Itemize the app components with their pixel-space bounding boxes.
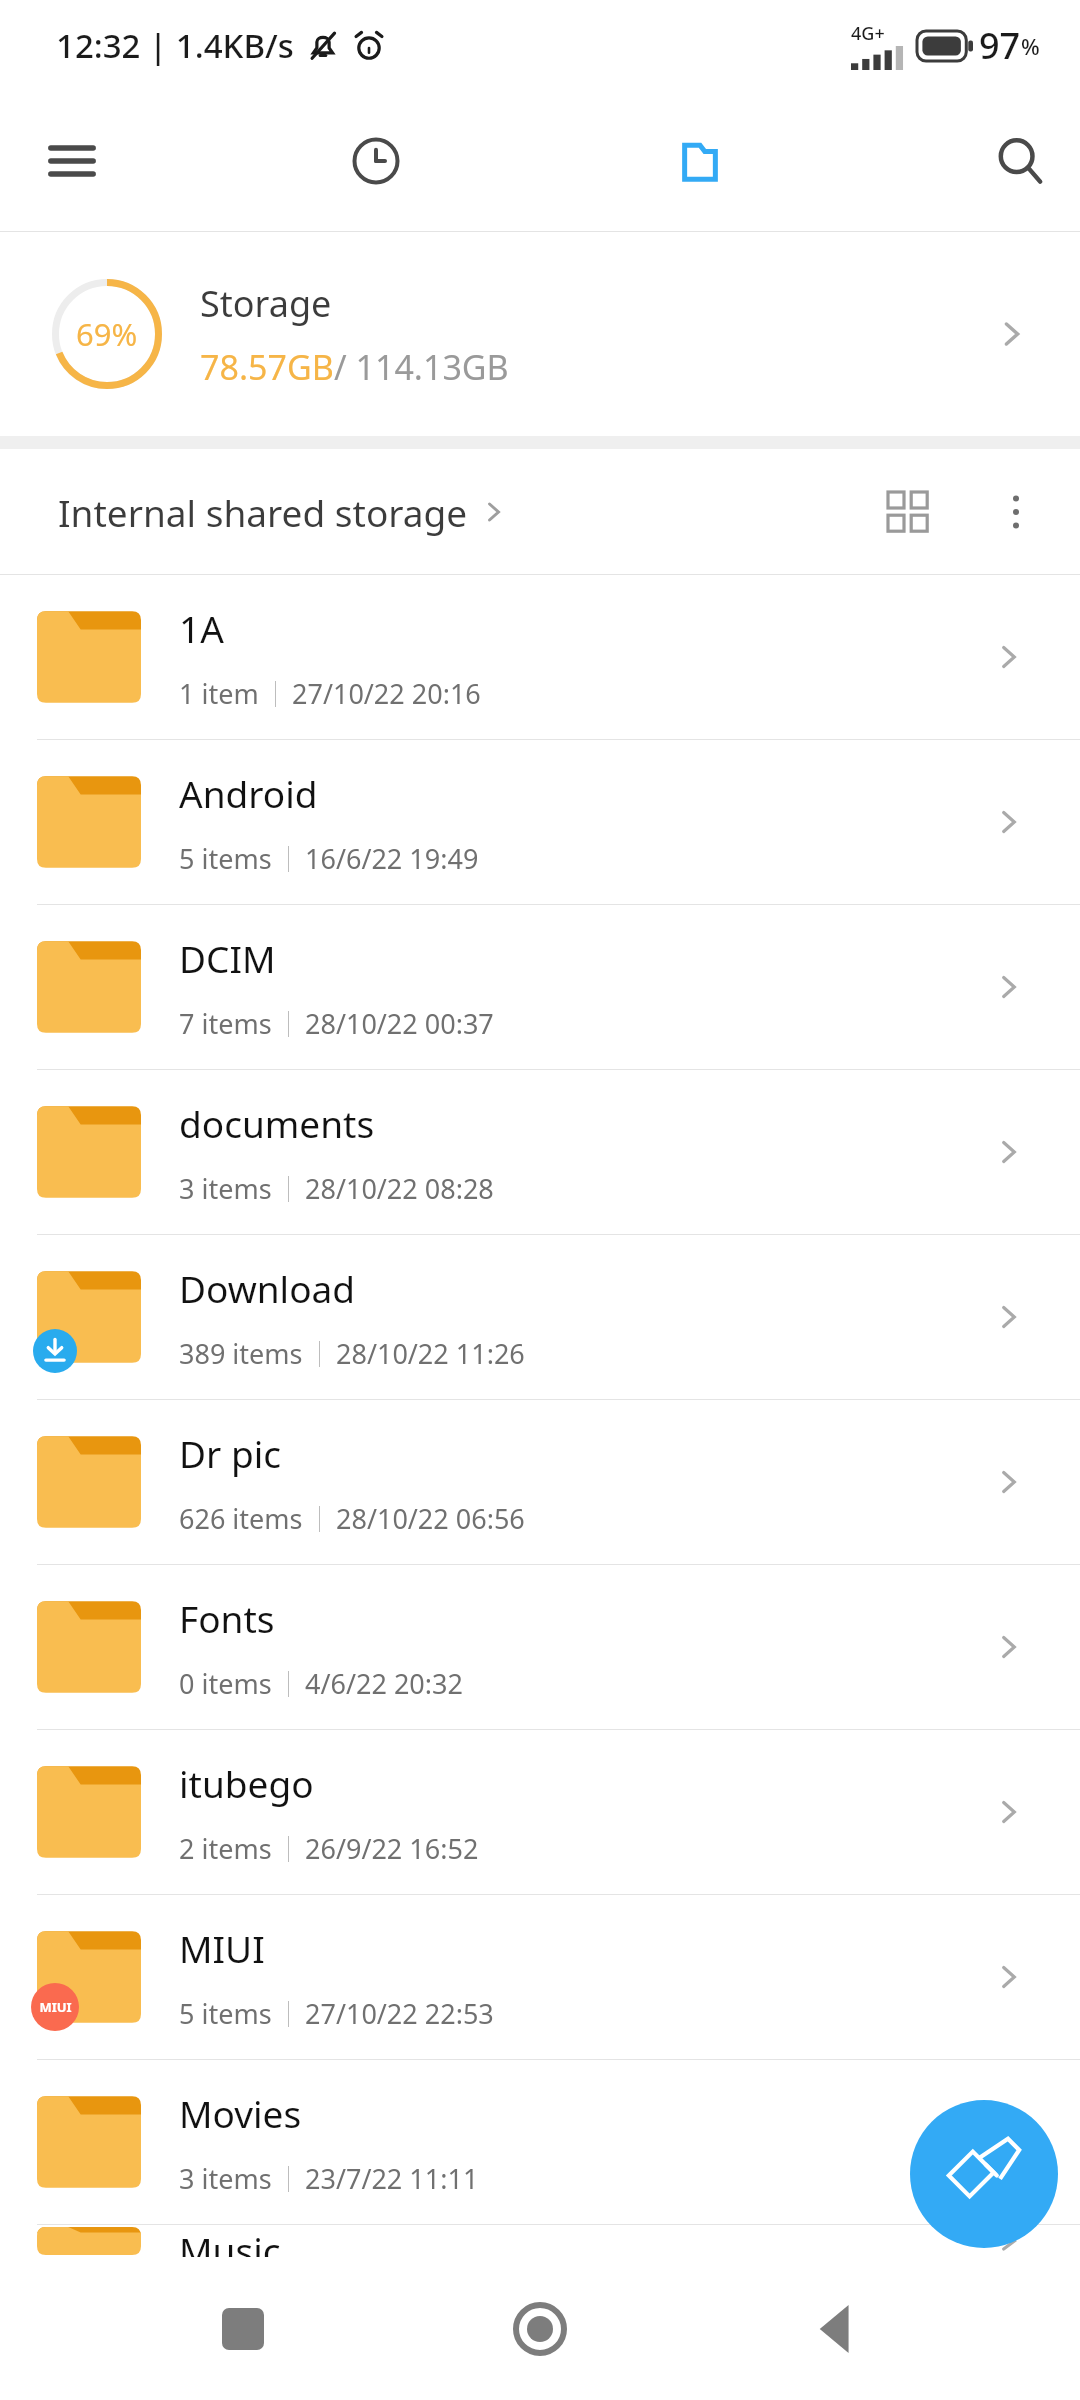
staticText: 27/10/22 20:16: [292, 675, 481, 712]
button[interactable]: Files: [652, 113, 748, 209]
staticText: 1A: [179, 603, 224, 653]
button[interactable]: itubego: [0, 1730, 1080, 1895]
button[interactable]: Search: [972, 113, 1068, 209]
button[interactable]: More options: [972, 468, 1060, 556]
staticText: Storage: [200, 279, 332, 328]
button[interactable]: Android: [0, 740, 1080, 905]
staticText: / 114.13GB: [334, 344, 509, 390]
staticText: 28/10/22 08:28: [305, 1170, 494, 1207]
staticText: Movies: [179, 2088, 302, 2138]
staticText: Download: [179, 1263, 356, 1313]
staticText: 626 items: [179, 1500, 303, 1537]
staticText: 4G+: [851, 21, 885, 46]
staticText: MIUI: [179, 1923, 265, 1973]
staticText: 7 items: [179, 1005, 272, 1042]
staticText: Music: [179, 2225, 281, 2257]
staticText: 97: [979, 21, 1021, 70]
button[interactable]: Home: [485, 2274, 595, 2384]
staticText: 2 items: [179, 1830, 272, 1867]
staticText: Dr pic: [179, 1428, 281, 1478]
staticText: 28/10/22 11:26: [336, 1335, 525, 1372]
staticText: MIUI: [39, 1998, 72, 2016]
staticText: documents: [179, 1098, 375, 1148]
staticText: 389 items: [179, 1335, 303, 1372]
button[interactable]: 1A: [0, 575, 1080, 740]
button[interactable]: MIUI: [0, 1895, 1080, 2060]
staticText: 1 item: [179, 675, 259, 712]
staticText: 3 items: [179, 1170, 272, 1207]
staticText: 3 items: [179, 2160, 272, 2197]
staticText: 27/10/22 22:53: [305, 1995, 494, 2032]
button[interactable]: DCIM: [0, 905, 1080, 1070]
button[interactable]: Recents: [188, 2274, 298, 2384]
button[interactable]: Music: [0, 2225, 1080, 2257]
staticText: 28/10/22 00:37: [305, 1005, 494, 1042]
staticText: 69%: [76, 313, 138, 355]
staticText: itubego: [179, 1758, 314, 1808]
staticText: Android: [179, 768, 318, 818]
staticText: %: [1021, 31, 1040, 61]
staticText: 5 items: [179, 1995, 272, 2032]
button[interactable]: Download: [0, 1235, 1080, 1400]
button[interactable]: Menu: [24, 113, 120, 209]
button[interactable]: Recent: [328, 113, 424, 209]
button[interactable]: Fonts: [0, 1565, 1080, 1730]
button[interactable]: Cleanup: [910, 2100, 1058, 2248]
staticText: 12:32 | 1.4KB/s: [56, 23, 294, 68]
button[interactable]: Movies: [0, 2060, 1080, 2225]
button[interactable]: documents: [0, 1070, 1080, 1235]
staticText: Internal shared storage: [58, 487, 468, 537]
staticText: 0 items: [179, 1665, 272, 1702]
staticText: 78.57GB: [200, 344, 334, 390]
staticText: 28/10/22 06:56: [336, 1500, 525, 1537]
button[interactable]: Back: [783, 2274, 893, 2384]
button[interactable]: Internal shared storage: [58, 487, 510, 537]
staticText: Fonts: [179, 1593, 275, 1643]
staticText: 4/6/22 20:32: [305, 1665, 463, 1702]
staticText: 16/6/22 19:49: [305, 840, 479, 877]
staticText: 5 items: [179, 840, 272, 877]
staticText: DCIM: [179, 933, 276, 983]
button[interactable]: Grid view: [864, 468, 952, 556]
button[interactable]: 69%: [0, 232, 1080, 436]
staticText: 23/7/22 11:11: [305, 2160, 479, 2197]
staticText: 26/9/22 16:52: [305, 1830, 479, 1867]
button[interactable]: Dr pic: [0, 1400, 1080, 1565]
